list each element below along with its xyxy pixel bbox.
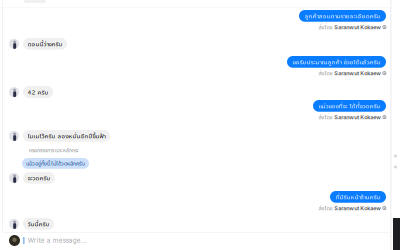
button[interactable]: จะวดครับ	[9, 172, 309, 184]
button[interactable]: แน่วของที่จะ ได้ทั้งวดครับ	[313, 100, 386, 112]
button[interactable]: ลูกค้าสอบถามรายละเอียดครับ	[299, 10, 386, 22]
staticText: ตอนนี้ว่างครับ	[27, 40, 62, 48]
staticText: ขอรับประมาณลูกค้า ช่วยได้แล้วครับ	[292, 58, 380, 66]
staticText: Write a message...	[28, 237, 87, 244]
staticText: แม้วอยู่ทั้งนี้ ไม่ได้วดหลักครับ	[26, 160, 85, 167]
button[interactable]: Shared media	[391, 162, 400, 172]
staticText: ส่งโดย	[319, 114, 333, 121]
staticText: Saranwut Kokaew	[334, 114, 381, 120]
staticText: ลูกค้าสอบถามรายละเอียดครับ	[304, 12, 380, 20]
button[interactable]: ขอรับประมาณลูกค้า ช่วยได้แล้วครับ	[287, 56, 386, 68]
staticText: แน่วของที่จะ ได้ทั้งวดครับ	[318, 102, 380, 110]
button[interactable]: โมเมไว้ครับ ลองหมั่นอีกปีขึ้นฟ้า	[9, 130, 309, 142]
staticText: Saranwut Kokaew	[334, 70, 381, 76]
staticText: จะวดครับ	[27, 174, 50, 182]
button[interactable]: ตอนนี้ว่างครับ	[9, 38, 309, 50]
staticText: ส่งโดย	[319, 24, 333, 31]
button[interactable]: แม้วอยู่ทั้งนี้ ไม่ได้วดหลักครับ	[22, 158, 89, 169]
staticText: 42 ครับ	[27, 88, 48, 96]
staticText: วันนี้ครับ	[27, 220, 49, 228]
button[interactable]: Chat info	[391, 151, 400, 161]
button[interactable]: ที่มีรับหน้าร้านครับ	[330, 191, 386, 203]
button[interactable]: 42 ครับ	[9, 86, 309, 98]
button[interactable]: Write a message...	[9, 231, 379, 250]
staticText: ส่งโดย	[319, 70, 333, 77]
staticText: Saranwut Kokaew	[334, 24, 381, 30]
staticText: ส่งโดย	[319, 205, 333, 212]
staticText: Saranwut Kokaew	[334, 205, 381, 211]
staticText: ที่มีรับหน้าร้านครับ	[335, 193, 380, 201]
staticText: โมเมไว้ครับ ลองหมั่นอีกปีขึ้นฟ้า	[27, 132, 105, 140]
button[interactable]: วันนี้ครับ	[9, 218, 309, 230]
staticText: กรอกรายการ และหลักกระ	[29, 147, 79, 154]
